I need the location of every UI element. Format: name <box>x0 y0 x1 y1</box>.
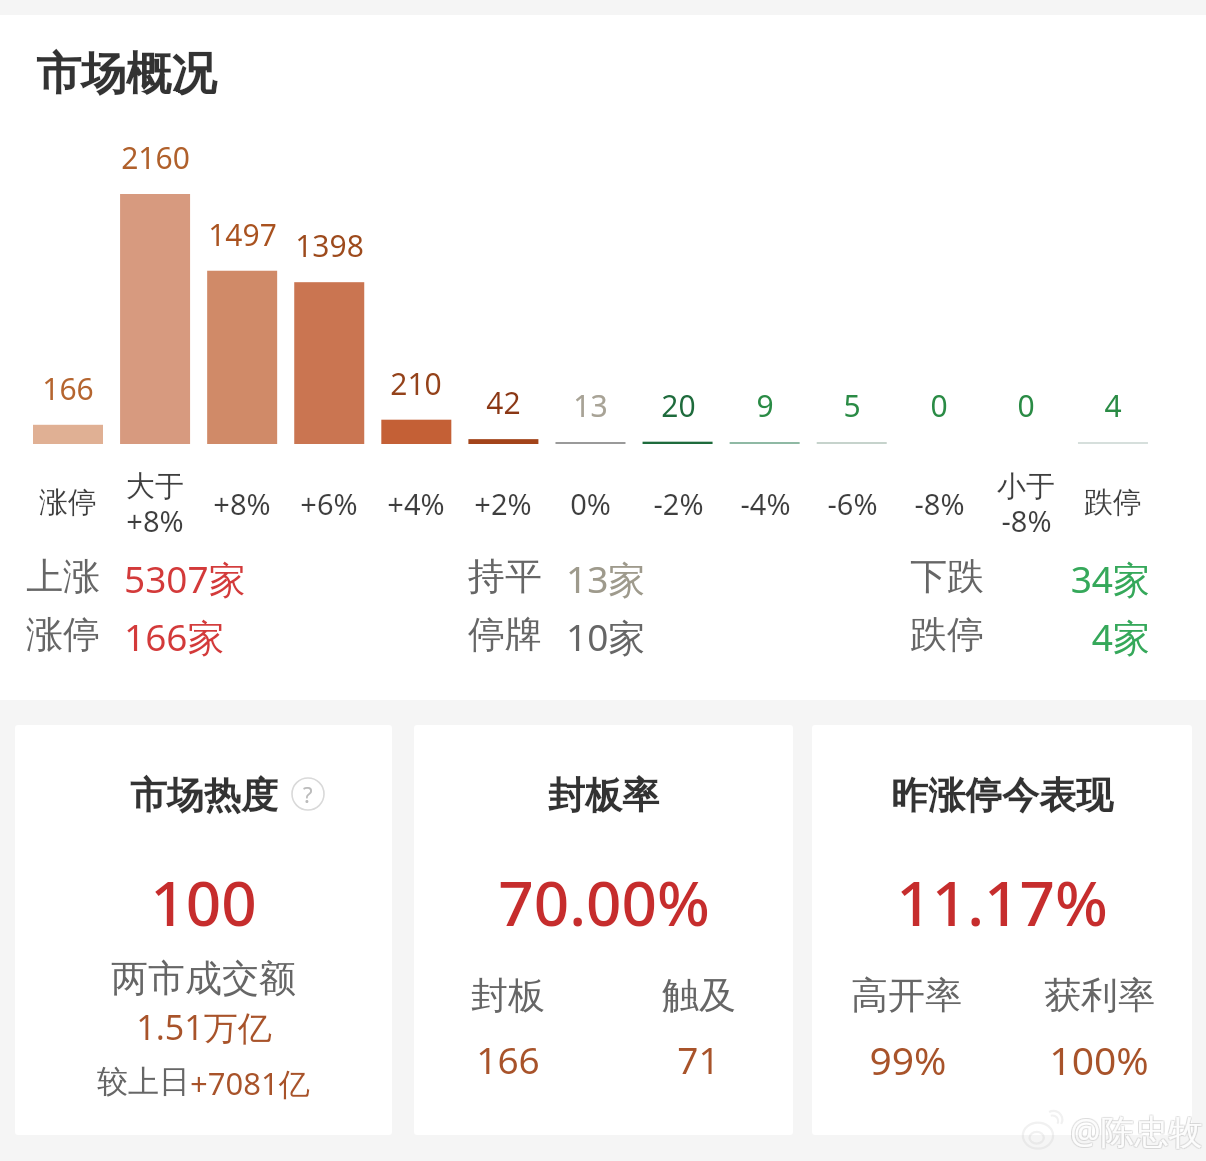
staticText: 0 <box>930 385 948 426</box>
staticText: 市场概况 <box>36 46 216 103</box>
staticText: 9 <box>756 385 774 426</box>
staticText: 5307家 <box>124 553 246 604</box>
staticText: 跌停 <box>910 611 984 658</box>
staticText: 大于 <box>126 468 184 505</box>
staticText: 停牌 <box>468 611 542 658</box>
staticText: 涨停 <box>39 484 97 521</box>
staticText: 两市成交额 <box>111 955 296 1002</box>
staticText: 210 <box>390 363 442 404</box>
staticText: 下跌 <box>910 553 984 600</box>
staticText: 13 <box>573 385 608 426</box>
staticText: 70.00% <box>498 860 710 944</box>
staticText: 4家 <box>1091 611 1150 662</box>
staticText: -8% <box>1001 501 1052 540</box>
staticText: 4 <box>1104 385 1122 426</box>
staticText: 166 <box>476 1034 540 1084</box>
staticText: 封板率 <box>548 772 659 819</box>
staticText: @陈忠牧 <box>1069 1108 1202 1154</box>
staticText: @陈忠牧 <box>1070 1109 1203 1155</box>
staticText: 市场热度 <box>130 772 278 819</box>
button[interactable]: 市场热度说明 <box>291 777 325 811</box>
staticText: -4% <box>740 484 791 523</box>
staticText: 100 <box>150 860 257 944</box>
staticText: 42 <box>486 382 521 423</box>
staticText: -8% <box>914 484 965 523</box>
staticText: +2% <box>474 484 532 523</box>
button[interactable]: 昨涨停今表现 <box>812 725 1192 1135</box>
staticText: 11.17% <box>896 860 1108 944</box>
staticText: 5 <box>843 385 861 426</box>
staticText: 71 <box>677 1034 720 1084</box>
staticText: -6% <box>827 484 878 523</box>
staticText: 166家 <box>124 611 225 662</box>
staticText: +8% <box>213 484 271 523</box>
staticText: 高开率 <box>851 972 962 1019</box>
staticText: 0% <box>570 484 611 523</box>
button[interactable]: 封板率 <box>414 725 793 1135</box>
staticText: 100% <box>1049 1033 1149 1086</box>
staticText: 较上日 <box>97 1062 190 1101</box>
staticText: 10家 <box>566 611 646 662</box>
staticText: 封板 <box>471 972 545 1019</box>
staticText: @陈忠牧 <box>1071 1108 1204 1154</box>
staticText: 166 <box>42 368 94 409</box>
staticText: 20 <box>661 385 696 426</box>
staticText: 昨涨停今表现 <box>891 772 1113 819</box>
staticText: 0 <box>1017 385 1035 426</box>
staticText: 1497 <box>208 214 277 255</box>
staticText: 触及 <box>662 972 736 1019</box>
staticText: @陈忠牧 <box>1071 1109 1204 1155</box>
staticText: 1398 <box>295 225 364 266</box>
staticText: 涨停 <box>26 611 100 658</box>
staticText: 持平 <box>468 553 542 600</box>
staticText: 上涨 <box>26 553 100 600</box>
staticText: 获利率 <box>1044 972 1155 1019</box>
staticText: 1.51万亿 <box>136 1004 272 1050</box>
staticText: 13家 <box>566 553 646 604</box>
staticText: 34家 <box>1070 553 1150 604</box>
staticText: @陈忠牧 <box>1069 1107 1202 1153</box>
staticText: ? <box>303 779 313 809</box>
staticText: @陈忠牧 <box>1071 1107 1204 1153</box>
staticText: @陈忠牧 <box>1069 1109 1202 1155</box>
staticText: -2% <box>653 484 704 523</box>
staticText: 99% <box>869 1033 947 1086</box>
staticText: +4% <box>387 484 445 523</box>
staticText: @陈忠牧 <box>1070 1108 1203 1154</box>
staticText: +6% <box>300 484 358 523</box>
staticText: @陈忠牧 <box>1070 1107 1203 1153</box>
button[interactable]: 市场热度 <box>15 725 392 1135</box>
staticText: 小于 <box>997 468 1055 505</box>
staticText: 2160 <box>121 137 190 178</box>
staticText: +7081亿 <box>190 1062 310 1104</box>
staticText: 跌停 <box>1084 484 1142 521</box>
staticText: +8% <box>126 501 184 540</box>
